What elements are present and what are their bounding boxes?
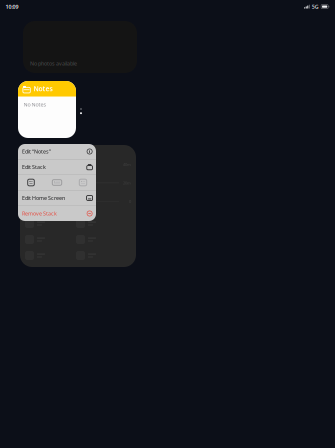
staticText: 20m	[123, 180, 131, 185]
staticText: Edit Home Screen	[22, 194, 65, 202]
staticText: 10:09	[5, 3, 18, 10]
staticText: Remove Stack	[22, 210, 57, 217]
staticText: 5G	[312, 3, 319, 10]
staticText: Screen Time	[28, 151, 68, 160]
staticText: Notes	[33, 84, 52, 93]
staticText: No Notes	[23, 101, 46, 108]
button[interactable]: Small widget	[18, 175, 44, 190]
staticText: No photos available	[30, 60, 77, 67]
staticText: Edit Stack	[22, 163, 46, 171]
staticText: 40m	[123, 162, 131, 167]
button[interactable]: Remove Stack	[18, 206, 96, 221]
button[interactable]: Edit “Notes”	[18, 144, 96, 159]
staticText: Edit “Notes”	[22, 148, 51, 155]
button[interactable]: Large widget	[70, 175, 96, 190]
button[interactable]: Edit Stack	[18, 159, 96, 174]
button[interactable]: Medium widget	[44, 175, 70, 190]
staticText: 0	[129, 199, 131, 204]
button[interactable]: Edit Home Screen	[18, 190, 96, 205]
